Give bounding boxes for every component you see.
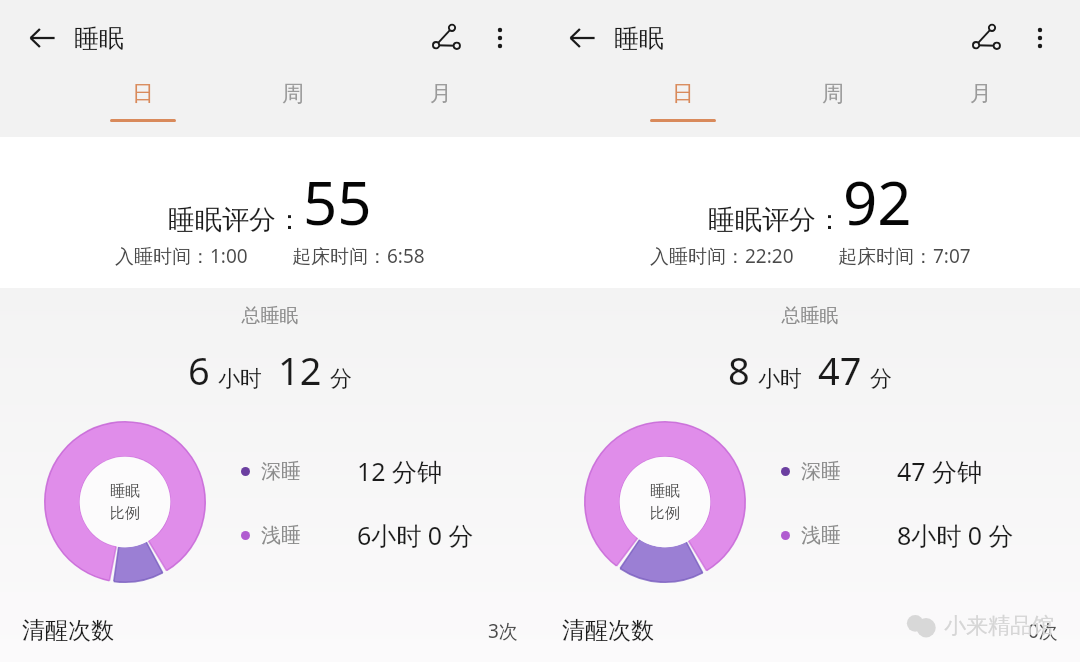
staticText: 周 (282, 80, 304, 108)
button[interactable]: Back (554, 10, 610, 66)
staticText: 47 (818, 344, 862, 396)
button[interactable]: 月 (408, 80, 474, 137)
button[interactable]: Share (418, 10, 474, 66)
button[interactable]: 周 (800, 80, 866, 137)
button[interactable]: Back (14, 10, 70, 66)
staticText: 周 (822, 80, 844, 108)
button[interactable]: Share (958, 10, 1014, 66)
button[interactable]: More options (474, 12, 526, 64)
staticText: 入睡时间：1:00 (115, 243, 248, 269)
staticText: 6 (188, 344, 210, 396)
button[interactable]: 月 (948, 80, 1014, 137)
staticText: 3次 (488, 618, 518, 644)
staticText: 日 (672, 80, 694, 108)
staticText: 睡眠 (614, 23, 664, 54)
staticText: 总睡眠 (540, 304, 1080, 328)
staticText: 6小时 0 分 (357, 518, 474, 552)
staticText: 分 (330, 365, 352, 393)
staticText: 清醒次数 (22, 616, 114, 645)
staticText: 起床时间：7:07 (838, 243, 971, 269)
button[interactable]: 日 (110, 80, 176, 137)
staticText: 92 (843, 161, 912, 243)
staticText: 浅睡 (801, 523, 841, 548)
button[interactable]: 周 (260, 80, 326, 137)
staticText: 8小时 0 分 (897, 518, 1014, 552)
staticText: 入睡时间：22:20 (650, 243, 794, 269)
staticText: 比例 (650, 504, 680, 523)
staticText: 47 分钟 (897, 454, 983, 488)
staticText: 55 (303, 161, 372, 243)
button[interactable]: 总睡眠 (0, 288, 540, 662)
staticText: 12 (278, 344, 322, 396)
staticText: 小时 (758, 365, 802, 393)
button[interactable]: 清醒次数 (22, 616, 518, 645)
button[interactable]: 日 (650, 80, 716, 137)
staticText: 深睡 (801, 459, 841, 484)
staticText: 浅睡 (261, 523, 301, 548)
staticText: 0次 (1028, 618, 1058, 644)
staticText: 深睡 (261, 459, 301, 484)
staticText: 睡眠 (74, 23, 124, 54)
staticText: 睡眠评分： (708, 203, 843, 237)
staticText: 月 (970, 80, 992, 108)
staticText: 小时 (218, 365, 262, 393)
staticText: 日 (132, 80, 154, 108)
staticText: 睡眠评分： (168, 203, 303, 237)
staticText: 月 (430, 80, 452, 108)
button[interactable]: More options (1014, 12, 1066, 64)
staticText: 比例 (110, 504, 140, 523)
staticText: 8 (728, 344, 750, 396)
staticText: 睡眠 (110, 482, 140, 501)
button[interactable]: 总睡眠 (540, 288, 1080, 662)
staticText: 分 (870, 365, 892, 393)
staticText: 小来精品馆 (944, 612, 1054, 640)
staticText: 清醒次数 (562, 616, 654, 645)
button[interactable]: 清醒次数 (562, 616, 1058, 645)
staticText: 睡眠 (650, 482, 680, 501)
staticText: 12 分钟 (357, 454, 443, 488)
staticText: 总睡眠 (0, 304, 540, 328)
staticText: 起床时间：6:58 (292, 243, 425, 269)
